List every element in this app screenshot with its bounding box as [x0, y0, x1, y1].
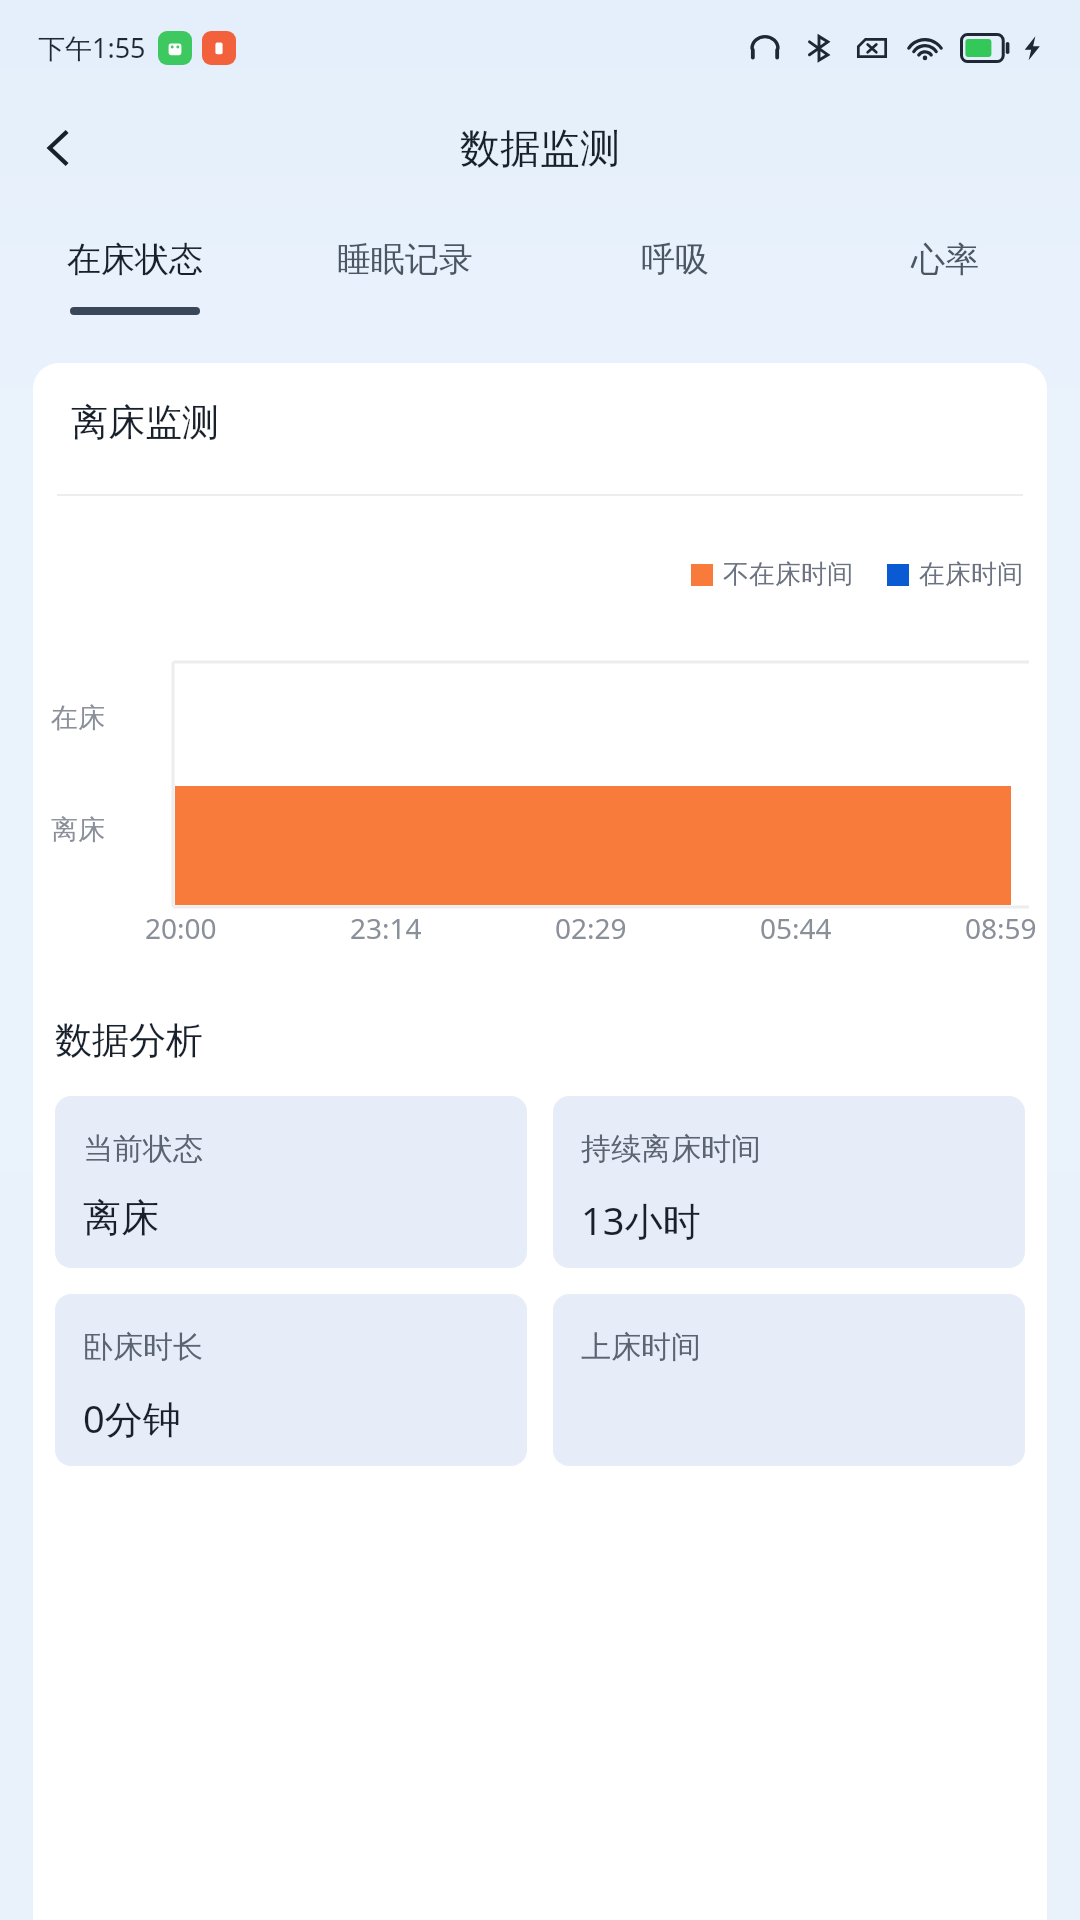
staticText: 睡眠记录	[337, 238, 473, 281]
button[interactable]: Back	[20, 110, 96, 186]
staticText: 离床	[51, 813, 105, 847]
button[interactable]: 睡眠记录	[270, 200, 540, 335]
staticText: 20:00	[145, 909, 217, 947]
staticText: 数据监测	[460, 123, 620, 173]
staticText: 不在床时间	[723, 558, 853, 591]
staticText: 持续离床时间	[581, 1130, 761, 1168]
staticText: 心率	[911, 238, 979, 281]
staticText: 08:59	[965, 909, 1037, 947]
button[interactable]: 呼吸	[540, 200, 810, 335]
button[interactable]: 当前状态	[55, 1096, 527, 1268]
button[interactable]: 在床状态	[0, 200, 270, 335]
button[interactable]: 持续离床时间	[553, 1096, 1025, 1268]
staticText: 0分钟	[83, 1392, 181, 1444]
staticText: 离床	[83, 1194, 159, 1242]
button[interactable]: 卧床时长	[55, 1294, 527, 1466]
staticText: 在床时间	[919, 558, 1023, 591]
staticText: 上床时间	[581, 1328, 701, 1366]
staticText: 23:14	[350, 909, 422, 947]
staticText: 数据分析	[55, 1017, 203, 1064]
staticText: 在床状态	[67, 238, 203, 281]
button[interactable]: 上床时间	[553, 1294, 1025, 1466]
button[interactable]: 心率	[810, 200, 1080, 335]
staticText: 13小时	[581, 1194, 701, 1246]
staticText: 05:44	[760, 909, 832, 947]
staticText: 02:29	[555, 909, 627, 947]
staticText: 离床监测	[71, 399, 219, 446]
staticText: 卧床时长	[83, 1328, 203, 1366]
staticText: 呼吸	[641, 238, 709, 281]
staticText: 在床	[51, 701, 105, 735]
staticText: 当前状态	[83, 1130, 203, 1168]
staticText: 下午1:55	[38, 29, 146, 66]
